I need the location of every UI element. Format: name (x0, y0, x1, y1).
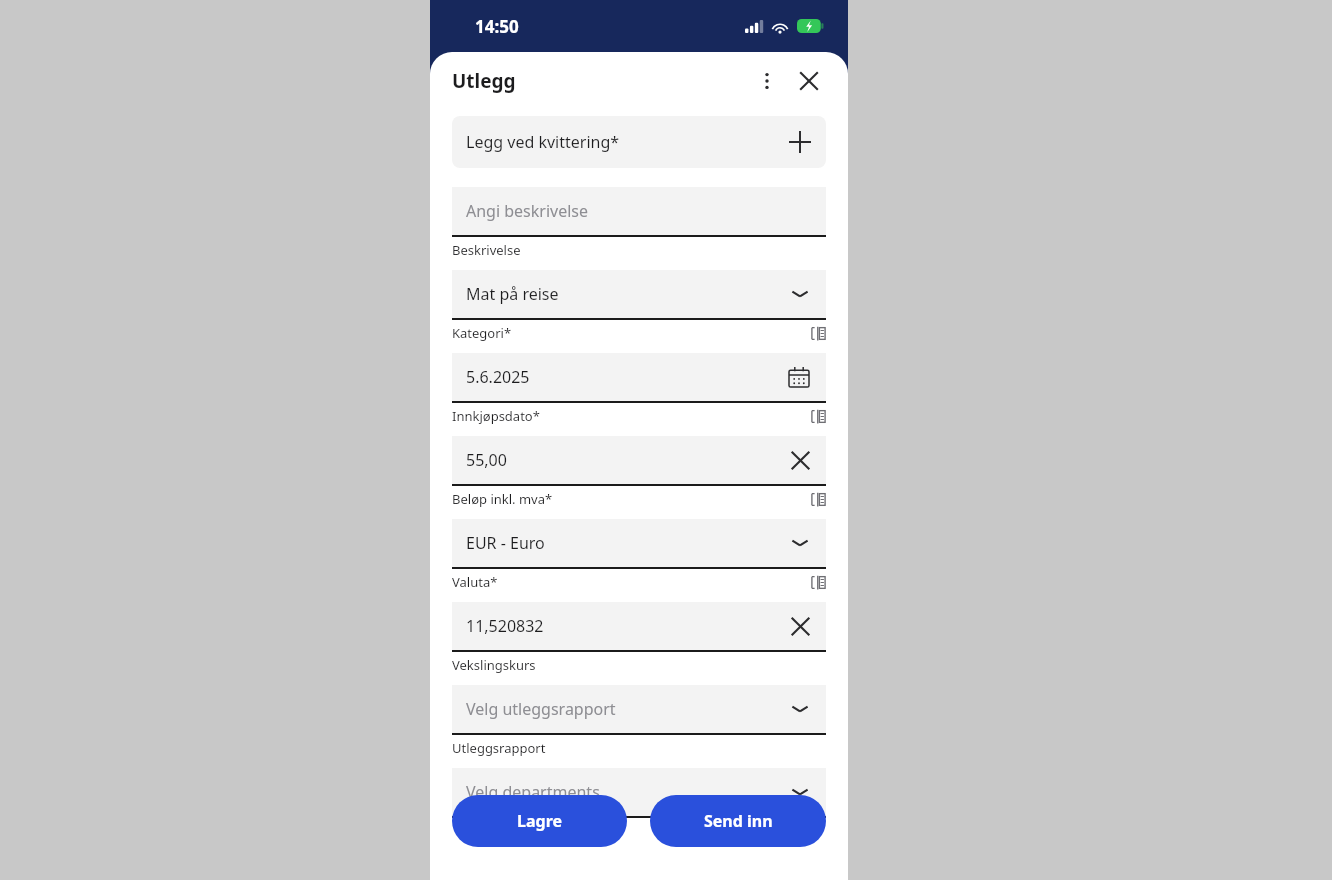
button[interactable]: 5.6.2025 (452, 353, 826, 401)
staticText: Lagre (517, 810, 563, 832)
staticText: Innkjøpsdato* (452, 407, 540, 425)
staticText: Send inn (704, 810, 773, 832)
staticText: 11,520832 (466, 615, 544, 637)
staticText: Utleggsrapport (452, 739, 546, 757)
button[interactable]: Mat på reise (452, 270, 826, 318)
staticText: Valuta* (452, 573, 498, 591)
staticText: Angi beskrivelse (466, 200, 589, 222)
staticText: 5.6.2025 (466, 366, 530, 388)
staticText: 14:50 (475, 15, 519, 38)
staticText: Utlegg (452, 68, 516, 94)
staticText: Kategori* (452, 324, 512, 342)
staticText: Velg utleggsrapport (466, 698, 616, 720)
button[interactable]: More options (746, 60, 788, 102)
button[interactable]: 55,00 (452, 436, 826, 484)
staticText: Legg ved kvittering* (466, 131, 620, 153)
staticText: Vekslingskurs (452, 656, 536, 674)
button[interactable]: Send inn (650, 795, 826, 847)
staticText: Mat på reise (466, 283, 559, 305)
staticText: Beløp inkl. mva* (452, 490, 553, 508)
button[interactable]: EUR - Euro (452, 519, 826, 567)
staticText: EUR - Euro (466, 532, 545, 554)
staticText: Velg departments (466, 781, 600, 803)
staticText: 55,00 (466, 449, 507, 471)
button[interactable]: Velg utleggsrapport (452, 685, 826, 733)
button[interactable]: Angi beskrivelse (452, 187, 826, 235)
button[interactable]: Lagre (452, 795, 627, 847)
button[interactable]: Legg ved kvittering* (452, 116, 826, 168)
staticText: Beskrivelse (452, 241, 521, 259)
button[interactable]: 11,520832 (452, 602, 826, 650)
button[interactable]: Close (788, 60, 830, 102)
button[interactable]: Velg departments (452, 768, 826, 816)
